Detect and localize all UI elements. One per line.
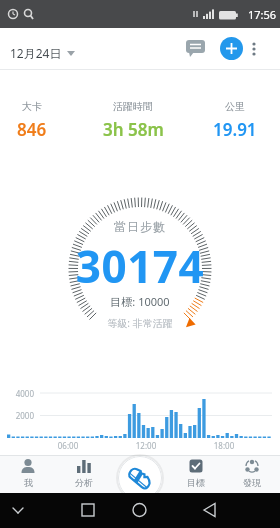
- button[interactable]: [182, 36, 209, 61]
- button[interactable]: 發現: [230, 457, 274, 488]
- staticText: 19.91: [213, 118, 257, 141]
- staticText: 3h 58m: [103, 118, 164, 141]
- button[interactable]: [118, 456, 162, 500]
- staticText: 目標: [187, 477, 205, 488]
- staticText: 2000: [8, 410, 34, 421]
- staticText: 我: [24, 477, 33, 488]
- button[interactable]: 大卡: [0, 100, 64, 141]
- button[interactable]: 活躍時間: [73, 100, 193, 141]
- staticText: 目標: 10000: [0, 294, 280, 309]
- staticText: 17:56: [248, 7, 277, 22]
- staticText: 活躍時間: [113, 100, 153, 113]
- button[interactable]: [220, 37, 243, 60]
- staticText: 18:00: [208, 440, 240, 451]
- staticText: 30174: [0, 236, 280, 296]
- staticText: 12月24日: [10, 45, 62, 61]
- staticText: 當日步數: [0, 219, 280, 234]
- button[interactable]: 12月24日: [10, 45, 75, 61]
- staticText: 分析: [75, 477, 93, 488]
- staticText: 公里: [225, 100, 245, 113]
- button[interactable]: [249, 39, 259, 59]
- button[interactable]: 分析: [62, 457, 106, 488]
- staticText: 846: [17, 118, 47, 141]
- staticText: 發現: [243, 477, 261, 488]
- button[interactable]: 我: [6, 457, 50, 488]
- staticText: 等級: 非常活躍: [0, 316, 280, 330]
- button[interactable]: 目標: [174, 457, 218, 488]
- staticText: 12:00: [130, 440, 162, 451]
- button[interactable]: 公里: [195, 100, 275, 141]
- staticText: 06:00: [52, 440, 84, 451]
- staticText: 大卡: [22, 100, 42, 113]
- staticText: 4000: [8, 388, 34, 399]
